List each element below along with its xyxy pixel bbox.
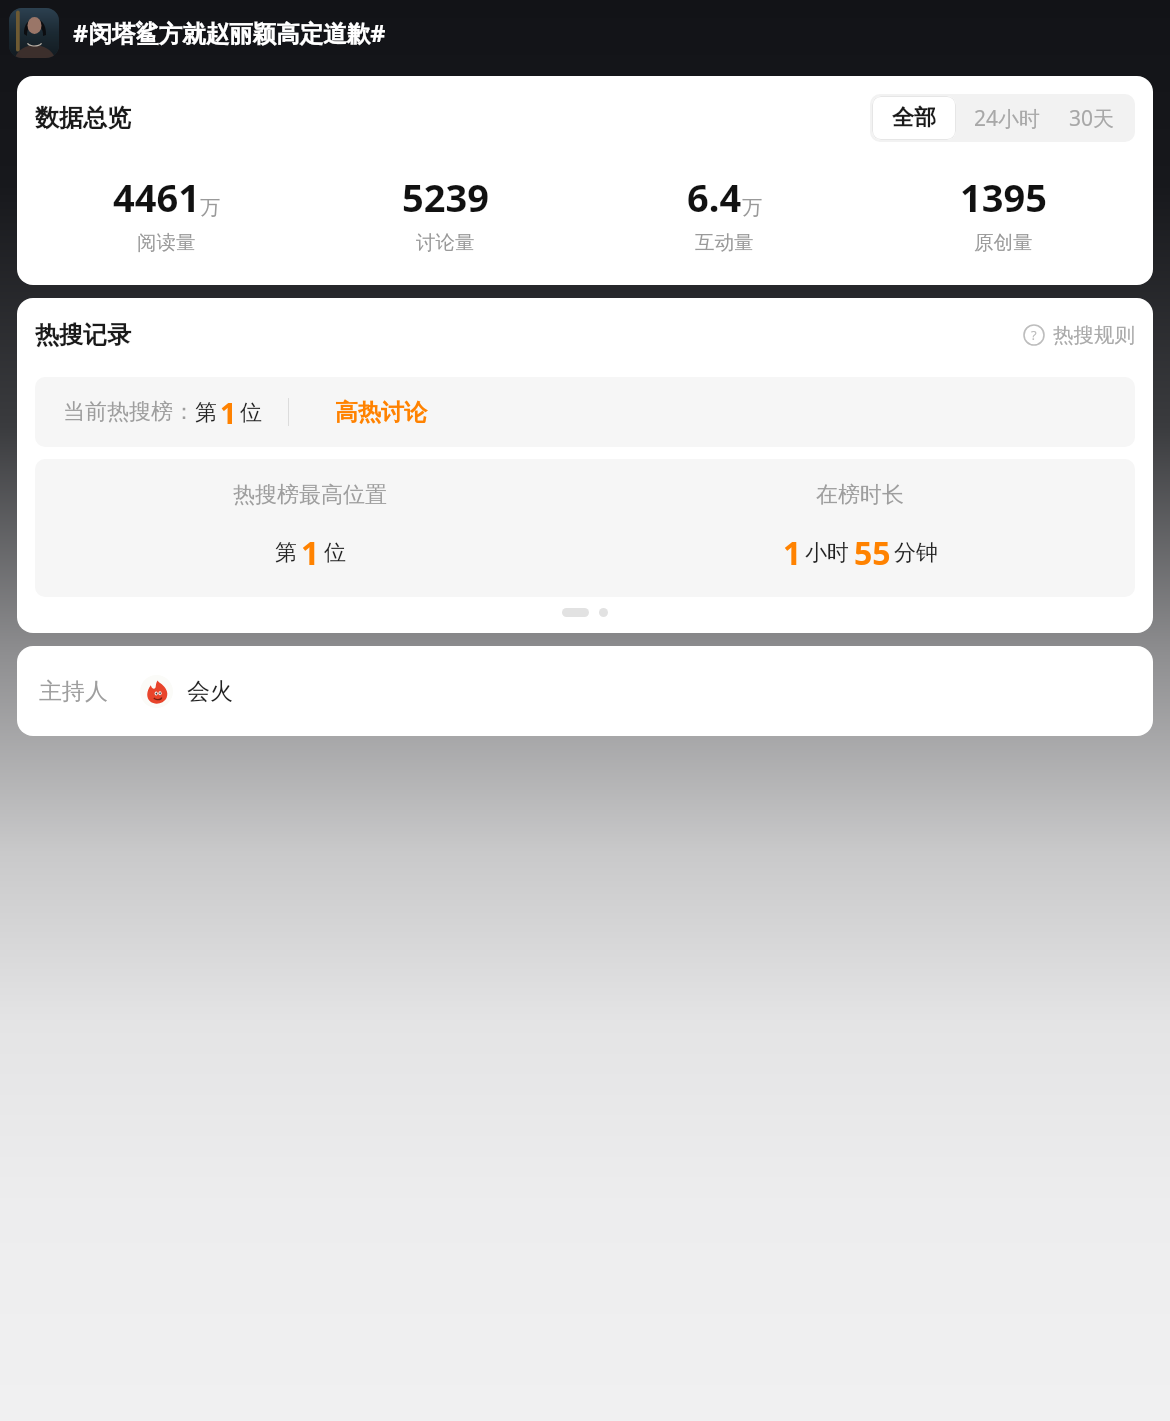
staticText: 热搜榜最高位置 — [233, 481, 387, 509]
staticText: 6.4 — [687, 171, 742, 223]
staticText: 5239 — [402, 171, 489, 223]
staticText: 阅读量 — [137, 230, 196, 255]
staticText: 24小时 — [974, 104, 1041, 132]
staticText: 会火 — [187, 677, 233, 706]
staticText: 第 — [275, 539, 297, 567]
staticText: 讨论量 — [416, 230, 475, 255]
staticText: 1395 — [960, 171, 1047, 223]
button[interactable]: 主持人 — [39, 646, 1153, 736]
button[interactable]: 1395 — [864, 171, 1143, 255]
staticText: 万 — [200, 195, 220, 220]
button[interactable]: 4461 — [27, 171, 306, 255]
staticText: 小时 — [805, 539, 849, 567]
button[interactable]: 热搜规则说明 — [1023, 322, 1135, 348]
button[interactable]: 6.4 — [585, 171, 864, 255]
staticText: 当前热搜榜： — [63, 398, 195, 426]
staticText: 主持人 — [39, 677, 108, 706]
staticText: 1 — [220, 393, 237, 432]
staticText: 位 — [240, 399, 262, 427]
staticText: 热搜规则 — [1053, 322, 1135, 348]
staticText: 30天 — [1069, 104, 1115, 132]
staticText: 互动量 — [695, 230, 754, 255]
staticText: 热搜记录 — [35, 320, 131, 350]
staticText: 全部 — [892, 104, 936, 132]
button[interactable]: 30天 — [1057, 94, 1135, 142]
staticText: #闵塔鲨方就赵丽颖高定道歉# — [73, 17, 386, 49]
staticText: 1 — [783, 531, 802, 575]
staticText: 4461 — [113, 171, 200, 223]
staticText: 万 — [742, 195, 762, 220]
button[interactable]: 在榜时长 — [585, 459, 1135, 597]
button[interactable]: 全部 — [872, 96, 956, 140]
staticText: 第 — [195, 399, 217, 427]
staticText: 数据总览 — [35, 103, 131, 133]
staticText: 位 — [324, 539, 346, 567]
staticText: 55 — [854, 531, 891, 575]
button[interactable]: 热搜榜最高位置 — [35, 459, 585, 597]
button[interactable]: 5239 — [306, 171, 585, 255]
button[interactable]: Topic avatar — [9, 8, 59, 58]
staticText: 高热讨论 — [335, 398, 427, 427]
staticText: 分钟 — [894, 539, 938, 567]
other: 会火 头像 — [140, 675, 173, 708]
other: 热搜规则说明 — [1023, 324, 1045, 346]
staticText: 原创量 — [974, 230, 1033, 255]
staticText: 1 — [301, 531, 320, 575]
staticText: ? — [1031, 326, 1037, 344]
staticText: 在榜时长 — [816, 481, 904, 509]
button[interactable]: 当前热搜榜： — [35, 377, 1135, 447]
button[interactable]: 24小时 — [958, 94, 1057, 142]
